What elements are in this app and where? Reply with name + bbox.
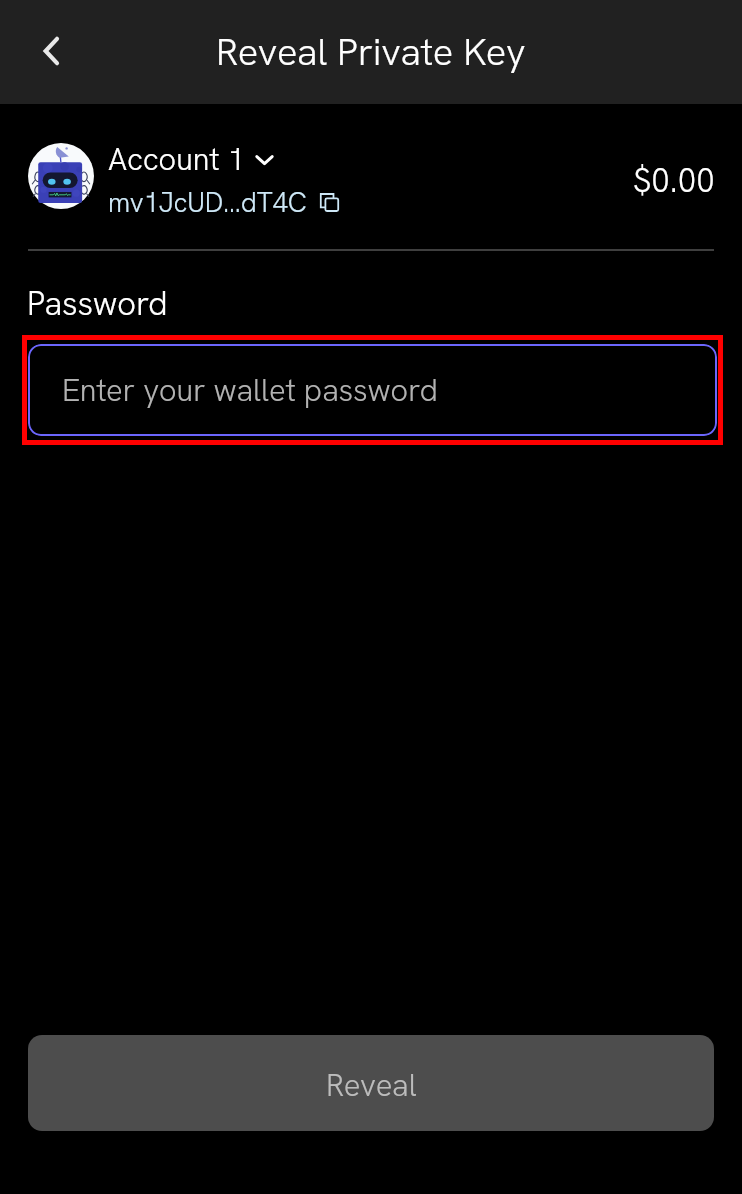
staticText: $0.00 (633, 159, 715, 202)
button[interactable]: Select account: Account 1 (28, 143, 274, 209)
staticText: Reveal (326, 1065, 417, 1105)
button[interactable]: Enter your wallet password (28, 344, 717, 436)
staticText: Enter your wallet password (62, 370, 438, 410)
staticText: Password (27, 282, 168, 325)
button[interactable]: Reveal (28, 1035, 714, 1131)
staticText: Reveal Private Key (216, 27, 526, 77)
button[interactable]: Copy address (108, 185, 340, 220)
staticText: Account 1 (108, 139, 245, 179)
staticText: mv1JcUD…dT4C (108, 185, 307, 220)
button[interactable]: Back (25, 25, 77, 77)
